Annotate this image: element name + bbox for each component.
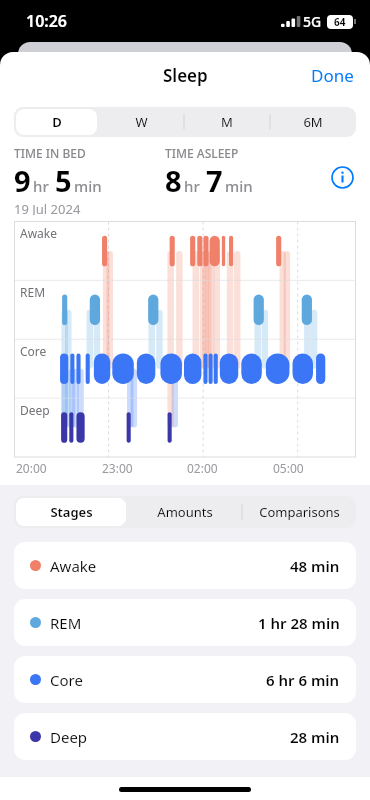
button[interactable]: Deep (14, 713, 356, 760)
button[interactable]: D (14, 107, 99, 137)
staticText: 64 (334, 15, 346, 29)
staticText: 10:26 (26, 10, 68, 32)
staticText: 9 (14, 161, 31, 200)
staticText: Core (20, 343, 47, 359)
staticText: Deep (20, 402, 50, 418)
staticText: TIME ASLEEP (165, 145, 239, 161)
button[interactable]: Done (295, 55, 370, 96)
staticText: 20:00 (16, 460, 47, 476)
staticText: 7 (206, 161, 223, 200)
staticText: 19 Jul 2024 (14, 200, 81, 215)
button[interactable]: Awake (14, 542, 356, 589)
staticText: Sleep (163, 64, 208, 87)
staticText: Done (311, 64, 354, 87)
button[interactable]: M (184, 107, 270, 137)
staticText: 5 (55, 161, 72, 200)
staticText: min (225, 176, 253, 196)
button[interactable]: REM (14, 599, 356, 646)
staticText: 02:00 (187, 460, 218, 476)
staticText: 28 min (290, 727, 340, 747)
staticText: 6 hr 6 min (266, 670, 340, 690)
staticText: 05:00 (273, 460, 304, 476)
staticText: REM (20, 284, 46, 300)
staticText: D (52, 113, 62, 131)
staticText: Awake (20, 225, 58, 241)
button[interactable]: Comparisons (242, 496, 356, 528)
staticText: Comparisons (259, 503, 340, 521)
staticText: Core (50, 670, 83, 690)
staticText: W (135, 113, 148, 131)
button[interactable]: Amounts (128, 496, 242, 528)
button[interactable]: W (99, 107, 184, 137)
staticText: 5G (303, 12, 322, 31)
staticText: 23:00 (102, 460, 133, 476)
staticText: 6M (303, 113, 323, 131)
staticText: hr (33, 176, 49, 196)
staticText: M (221, 113, 233, 131)
staticText: 48 min (290, 556, 340, 576)
button[interactable]: Stages (14, 496, 128, 528)
staticText: Awake (50, 556, 97, 576)
button[interactable]: Core (14, 656, 356, 703)
staticText: Stages (50, 503, 93, 521)
staticText: Amounts (157, 503, 213, 521)
button[interactable]: 6M (270, 107, 356, 137)
staticText: REM (50, 613, 82, 633)
staticText: min (74, 176, 102, 196)
staticText: hr (184, 176, 200, 196)
staticText: Deep (50, 727, 88, 747)
staticText: 8 (165, 161, 182, 200)
button[interactable]: About sleep stages (327, 162, 357, 192)
staticText: 1 hr 28 min (258, 613, 340, 633)
staticText: TIME IN BED (14, 145, 86, 161)
